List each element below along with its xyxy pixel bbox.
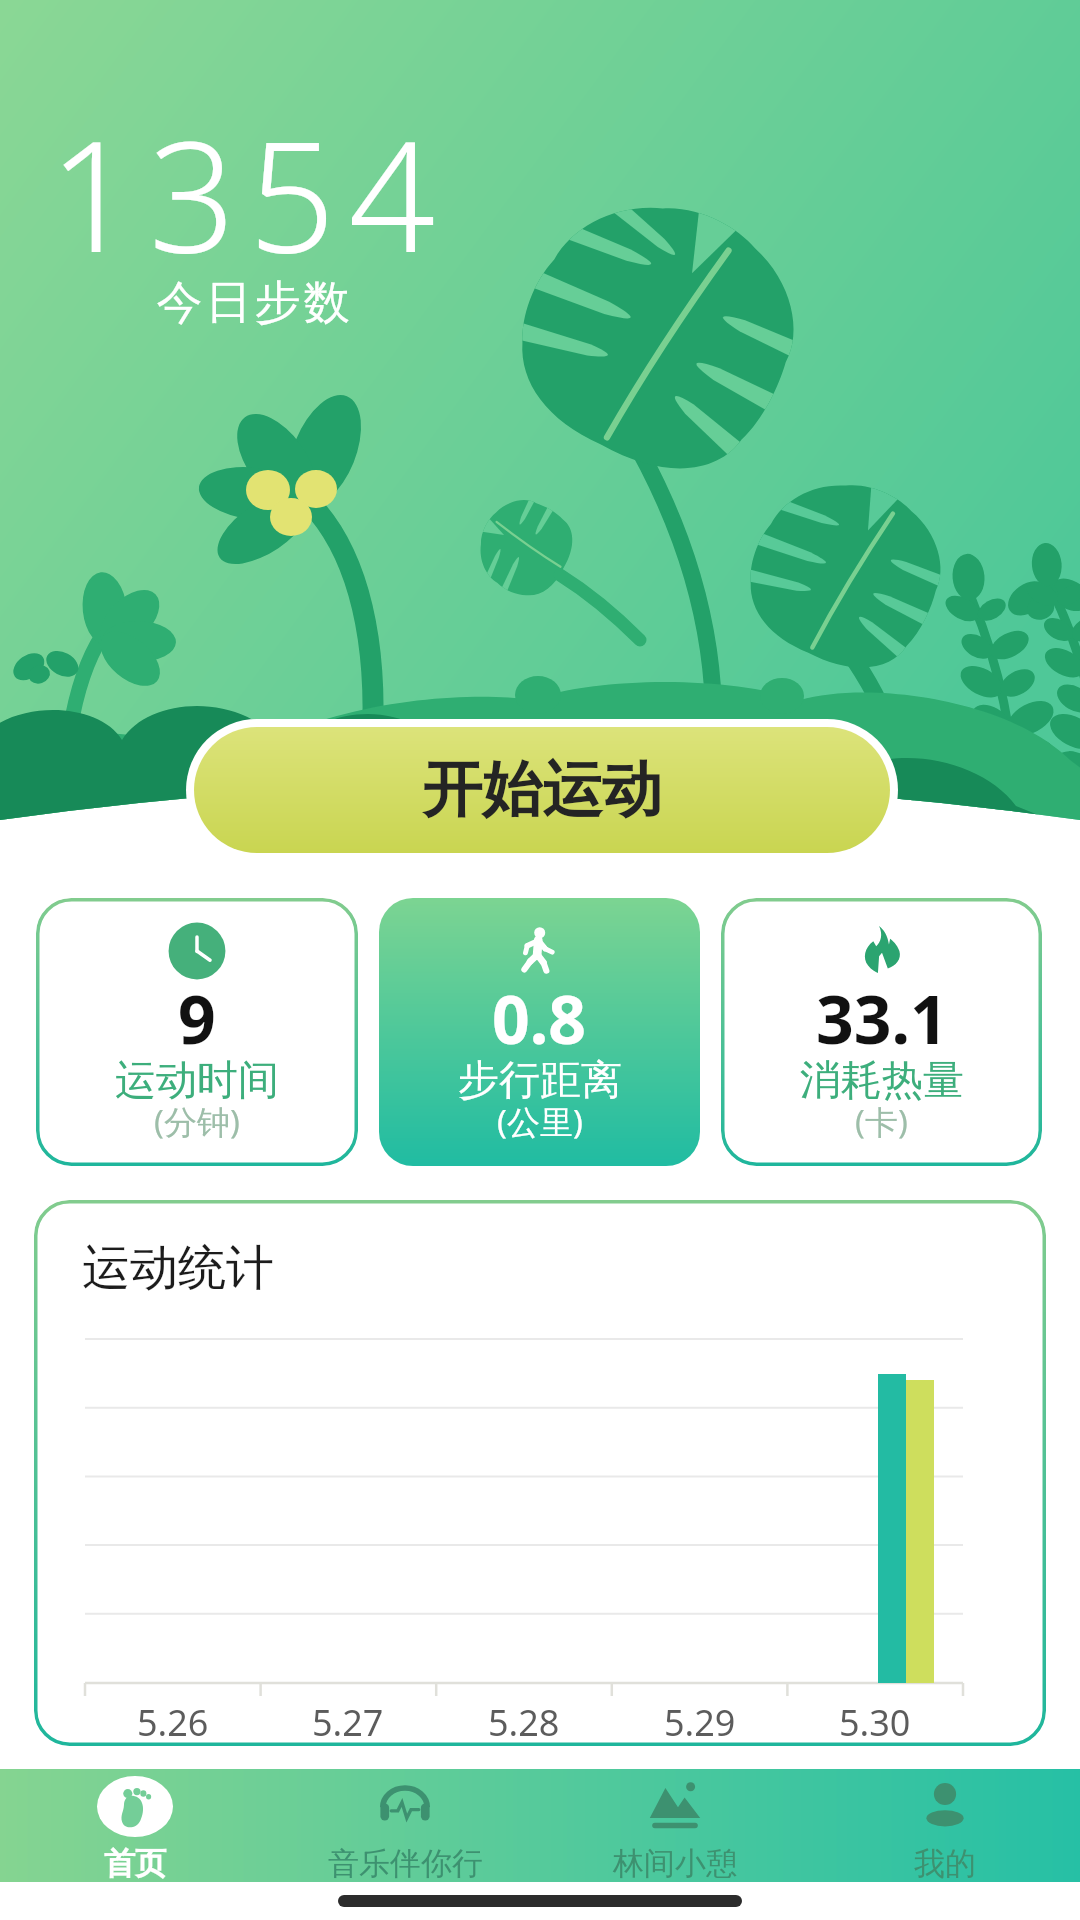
- staticText: 林间小憩: [613, 1844, 737, 1883]
- staticText: (卡): [855, 1099, 908, 1144]
- staticText: 运动时间: [115, 1055, 279, 1107]
- staticText: 5.28: [488, 1698, 560, 1746]
- staticText: 运动统计: [82, 1238, 274, 1298]
- staticText: 0.8: [492, 973, 587, 1063]
- button[interactable]: 音乐伴你行: [270, 1769, 540, 1882]
- staticText: 5.27: [312, 1698, 384, 1746]
- staticText: 消耗热量: [800, 1055, 964, 1107]
- button[interactable]: 9: [36, 898, 358, 1166]
- staticText: 我的: [914, 1844, 976, 1883]
- staticText: 1354: [49, 90, 449, 297]
- staticText: 今日步数: [155, 274, 351, 332]
- staticText: 5.29: [664, 1698, 736, 1746]
- button[interactable]: 我的: [810, 1769, 1080, 1882]
- staticText: 步行距离: [458, 1055, 622, 1107]
- button[interactable]: 33.1: [721, 898, 1042, 1166]
- staticText: 5.26: [137, 1698, 209, 1746]
- button[interactable]: 0.8: [379, 898, 700, 1166]
- staticText: (公里): [497, 1099, 583, 1144]
- staticText: (分钟): [154, 1099, 240, 1144]
- button[interactable]: 首页: [0, 1769, 270, 1882]
- button[interactable]: 林间小憩: [540, 1769, 810, 1882]
- staticText: 音乐伴你行: [328, 1844, 483, 1883]
- staticText: 5.30: [839, 1698, 911, 1746]
- staticText: 9: [178, 973, 216, 1063]
- staticText: 首页: [104, 1844, 166, 1883]
- button[interactable]: 开始运动: [194, 727, 890, 853]
- staticText: 开始运动: [422, 752, 662, 828]
- staticText: 33.1: [816, 973, 948, 1063]
